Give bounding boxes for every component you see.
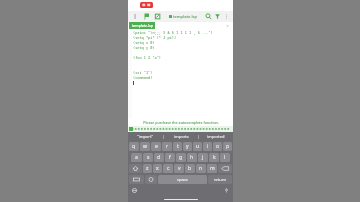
button[interactable]: template.lsp — [167, 14, 199, 19]
staticText: j — [202, 154, 204, 161]
button[interactable]: h — [187, 153, 197, 162]
staticText: (ssi "l") — [133, 70, 153, 75]
staticText: template.lsp — [132, 23, 153, 28]
button[interactable]: w — [140, 142, 150, 151]
button[interactable]: x — [153, 164, 162, 173]
staticText: d — [157, 154, 161, 161]
button[interactable]: i — [203, 142, 212, 151]
staticText: k — [213, 154, 216, 161]
staticText: m — [210, 165, 215, 172]
staticText: r — [166, 143, 169, 150]
staticText: s — [147, 154, 150, 161]
button[interactable]: Numbers — [129, 175, 144, 184]
button[interactable]: p — [223, 142, 232, 151]
button[interactable]: v — [174, 164, 184, 173]
button[interactable]: r — [162, 142, 172, 151]
button[interactable]: return — [208, 175, 232, 184]
staticText: l — [224, 154, 226, 161]
button[interactable]: s — [143, 153, 153, 162]
staticText: q — [132, 143, 136, 150]
staticText: p — [226, 143, 230, 150]
staticText: h — [190, 154, 194, 161]
button[interactable]: imported — [199, 132, 233, 141]
staticText: (setq y 0) — [133, 45, 155, 50]
button[interactable]: Filter — [213, 12, 222, 21]
button[interactable]: imports — [164, 132, 198, 141]
button[interactable]: d — [154, 153, 164, 162]
button[interactable]: u — [193, 142, 202, 151]
staticText: x — [156, 165, 159, 172]
button[interactable]: n — [196, 164, 206, 173]
staticText: template.lsp — [173, 14, 197, 19]
staticText: "import" — [137, 134, 154, 139]
staticText: z — [146, 165, 149, 172]
button[interactable]: t — [173, 142, 182, 151]
button[interactable]: Backspace — [218, 164, 232, 173]
button[interactable]: Search — [204, 12, 213, 21]
staticText: v — [178, 165, 181, 172]
staticText: u — [196, 143, 200, 150]
staticText: g — [179, 154, 183, 161]
button[interactable]: k — [209, 153, 219, 162]
staticText: imports — [174, 134, 189, 139]
staticText: (foo 1 2 "a") — [133, 55, 162, 60]
staticText: return — [214, 177, 226, 182]
staticText: imported — [207, 134, 225, 139]
button[interactable]: a — [131, 153, 142, 162]
button[interactable]: "import" — [128, 132, 163, 141]
button[interactable]: Shift — [129, 164, 142, 173]
staticText: (setq x 0) — [133, 40, 155, 45]
button[interactable]: f — [165, 153, 175, 162]
button[interactable]: e — [151, 142, 161, 151]
button[interactable]: Build — [153, 12, 162, 21]
button[interactable]: More options — [222, 12, 231, 21]
staticText: n — [199, 165, 203, 172]
button[interactable]: Menu — [131, 12, 140, 21]
button[interactable]: Run — [142, 12, 151, 21]
button[interactable]: Recording — [140, 2, 153, 8]
button[interactable]: space — [158, 175, 207, 184]
button[interactable]: g — [176, 153, 186, 162]
staticText: i — [207, 143, 209, 150]
staticText: (setq *pi* (* 2 pi)) — [133, 35, 177, 40]
button[interactable]: Emoji — [145, 175, 157, 184]
button[interactable]: Dictation — [223, 187, 230, 194]
button[interactable]: c — [163, 164, 173, 173]
button[interactable]: m — [207, 164, 217, 173]
button[interactable]: j — [198, 153, 208, 162]
staticText: o — [216, 143, 220, 150]
staticText: y — [186, 143, 189, 150]
button[interactable]: (princ "\n;;; 5 & 6 1 1 1 1 , 6 ...") — [128, 29, 233, 119]
staticText: a — [135, 154, 138, 161]
staticText: space — [177, 177, 188, 182]
staticText: (princ "\n;;; 5 & 6 1 1 1 1 , 6 ...") — [133, 30, 213, 35]
button[interactable]: o — [213, 142, 222, 151]
button[interactable]: q — [129, 142, 139, 151]
staticText: c — [167, 165, 170, 172]
staticText: t — [177, 143, 179, 150]
staticText: w — [143, 143, 147, 150]
staticText: Please purchase the autocomplete functio… — [143, 120, 219, 125]
button[interactable]: l — [220, 153, 230, 162]
staticText: b — [188, 165, 192, 172]
button[interactable]: y — [183, 142, 192, 151]
staticText: f — [169, 154, 171, 161]
button[interactable]: z — [143, 164, 152, 173]
button[interactable]: Globe — [131, 187, 138, 194]
button[interactable]: template.lsp — [129, 22, 155, 29]
staticText: e — [155, 143, 158, 150]
staticText: (command) — [133, 75, 153, 80]
button[interactable]: b — [185, 164, 195, 173]
